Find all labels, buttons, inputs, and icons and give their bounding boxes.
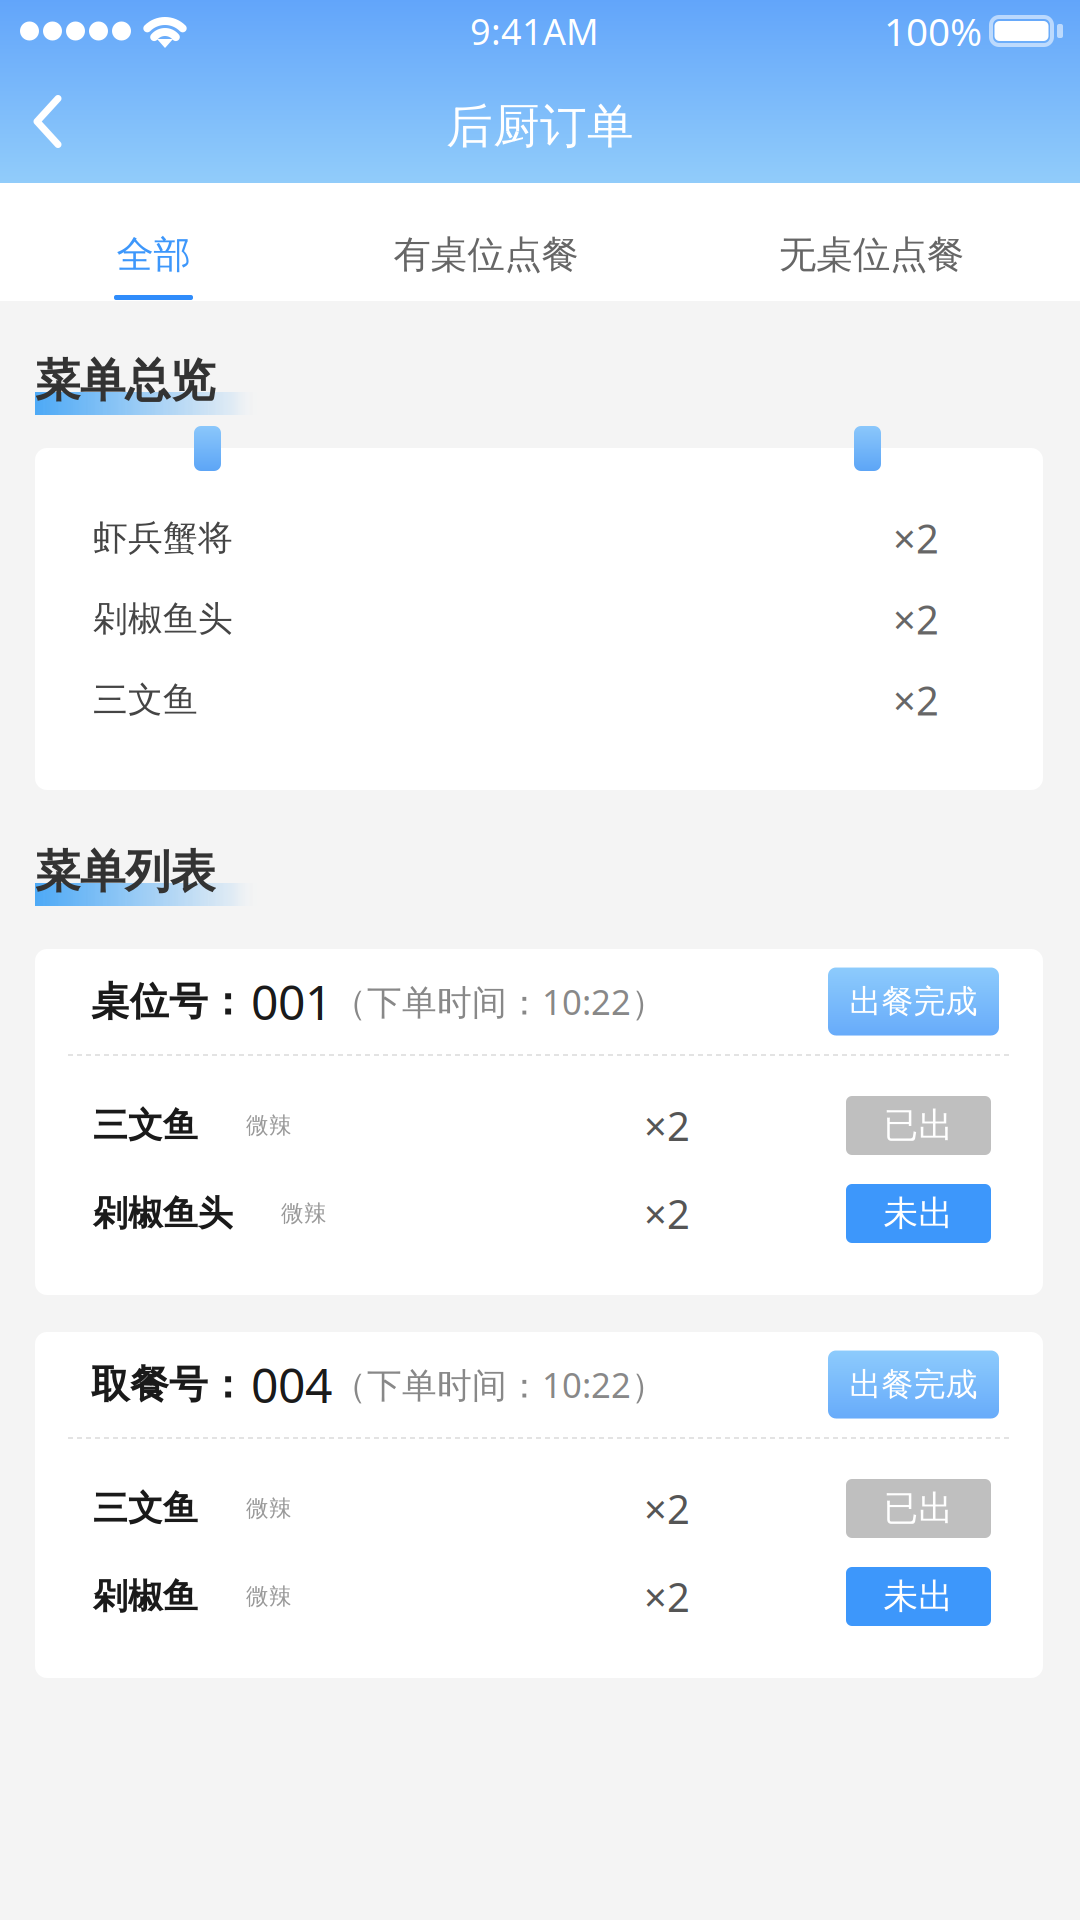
staticText: 未出 (883, 1192, 953, 1235)
staticText: 菜单列表 (35, 844, 215, 900)
staticText: ×2 (644, 1187, 690, 1240)
staticText: ×2 (893, 592, 939, 645)
staticText: 004 (251, 1353, 332, 1416)
staticText: ×2 (893, 673, 939, 726)
button[interactable]: 未出 (846, 1567, 991, 1626)
button[interactable]: 无桌位点餐 (779, 183, 964, 301)
button[interactable]: 有桌位点餐 (393, 183, 578, 301)
staticText: 全部 (116, 232, 190, 278)
staticText: 剁椒鱼头 (93, 598, 233, 640)
staticText: ×2 (644, 1482, 690, 1535)
staticText: 剁椒鱼 (93, 1575, 198, 1618)
staticText: ×2 (644, 1570, 690, 1623)
button[interactable]: 已出 (846, 1096, 991, 1155)
staticText: 菜单总览 (35, 353, 215, 409)
staticText: 微辣 (281, 1200, 327, 1227)
button[interactable]: Back (0, 62, 96, 183)
staticText: （下单时间：10:22） (332, 978, 666, 1024)
button[interactable]: 出餐完成 (828, 1350, 999, 1418)
staticText: 剁椒鱼头 (93, 1192, 233, 1235)
staticText: 后厨订单 (446, 98, 634, 155)
staticText: 出餐完成 (849, 1365, 977, 1404)
staticText: （下单时间：10:22） (332, 1361, 666, 1407)
staticText: 已出 (883, 1104, 953, 1147)
staticText: 有桌位点餐 (393, 232, 578, 278)
staticText: 已出 (883, 1487, 953, 1530)
staticText: 微辣 (246, 1112, 292, 1139)
button[interactable]: 未出 (846, 1184, 991, 1243)
staticText: 桌位号： (91, 978, 247, 1025)
staticText: 出餐完成 (849, 982, 977, 1021)
staticText: 虾兵蟹将 (93, 517, 233, 559)
button[interactable]: 已出 (846, 1479, 991, 1538)
staticText: 三文鱼 (93, 1487, 198, 1530)
staticText: 001 (251, 970, 332, 1033)
staticText: 100% (884, 5, 982, 57)
staticText: ×2 (644, 1099, 690, 1152)
staticText: 微辣 (246, 1495, 292, 1522)
staticText: 微辣 (246, 1583, 292, 1610)
staticText: 9:41AM (470, 7, 599, 55)
staticText: ×2 (893, 511, 939, 564)
staticText: 未出 (883, 1575, 953, 1618)
button[interactable]: 出餐完成 (828, 967, 999, 1035)
staticText: 取餐号： (91, 1361, 247, 1408)
button[interactable]: 全部 (114, 183, 193, 301)
staticText: 三文鱼 (93, 1104, 198, 1147)
staticText: 三文鱼 (93, 679, 198, 721)
staticText: 无桌位点餐 (779, 232, 964, 278)
